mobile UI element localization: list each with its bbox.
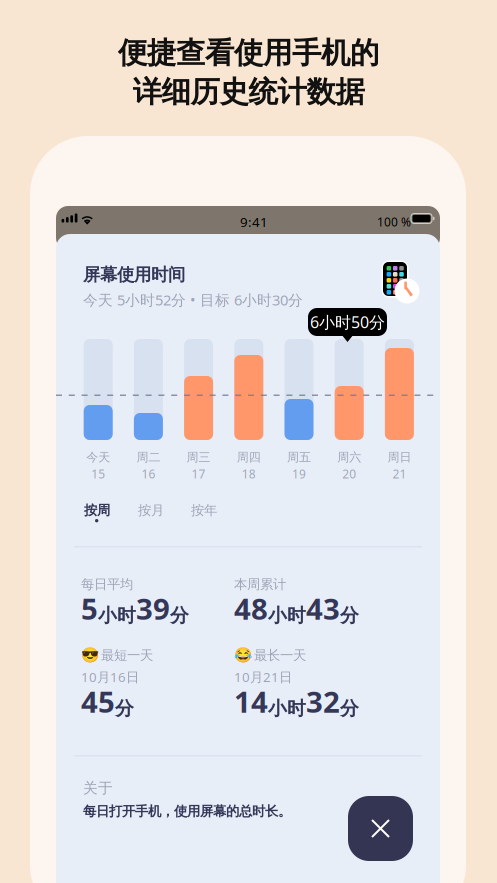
staticText: 周六 [337, 450, 361, 465]
staticText: 9:41 [240, 213, 268, 231]
staticText: 19 [292, 466, 306, 482]
staticText: 21 [392, 466, 406, 482]
staticText: 便捷查看使用手机的 [118, 35, 379, 71]
staticText: 按周 [84, 502, 110, 518]
staticText: 周四 [237, 450, 261, 465]
staticText: 按月 [138, 502, 164, 518]
staticText: 48 [234, 589, 268, 628]
staticText: 小时 [98, 604, 136, 627]
staticText: 分 [115, 697, 134, 720]
staticText: 45 [81, 682, 115, 721]
staticText: 100 % [377, 214, 411, 230]
staticText: 39 [136, 589, 170, 628]
button[interactable]: 按年 [191, 502, 217, 518]
staticText: 每日平均 [81, 576, 133, 592]
staticText: 10月21日 [234, 668, 292, 686]
staticText: 最短一天 [101, 647, 153, 664]
staticText: 按年 [191, 502, 217, 518]
staticText: 关于 [83, 779, 113, 797]
staticText: 今天 5小时52分 • 目标 6小时30分 [83, 290, 303, 309]
staticText: 14 [234, 682, 268, 721]
staticText: 😂 [234, 647, 252, 664]
staticText: 周二 [136, 450, 160, 465]
staticText: 32 [306, 682, 340, 721]
staticText: 16 [141, 466, 155, 482]
staticText: 每日打开手机，使用屏幕的总时长。 [83, 803, 291, 819]
staticText: 分 [340, 604, 359, 627]
staticText: 分 [170, 604, 189, 627]
staticText: 小时 [268, 697, 306, 720]
button[interactable]: 关闭 [348, 796, 413, 861]
staticText: 最长一天 [254, 647, 306, 664]
staticText: 分 [340, 697, 359, 720]
staticText: 屏幕使用时间 [83, 264, 185, 285]
staticText: 详细历史统计数据 [132, 74, 364, 110]
staticText: 小时 [268, 604, 306, 627]
staticText: 5 [81, 589, 98, 628]
staticText: 周五 [287, 450, 311, 465]
staticText: 10月16日 [81, 668, 139, 686]
staticText: 本周累计 [234, 576, 286, 592]
staticText: 18 [242, 466, 256, 482]
staticText: 😎 [81, 647, 99, 664]
staticText: 15 [91, 466, 105, 482]
staticText: 6小时50分 [310, 311, 385, 333]
staticText: 17 [192, 466, 206, 482]
staticText: 周日 [387, 450, 411, 465]
staticText: 周三 [187, 450, 211, 465]
button[interactable]: 按月 [138, 502, 164, 518]
staticText: 今天 [86, 450, 110, 465]
staticText: 43 [306, 589, 340, 628]
staticText: 20 [342, 466, 356, 482]
button[interactable]: 按周 [84, 502, 110, 518]
